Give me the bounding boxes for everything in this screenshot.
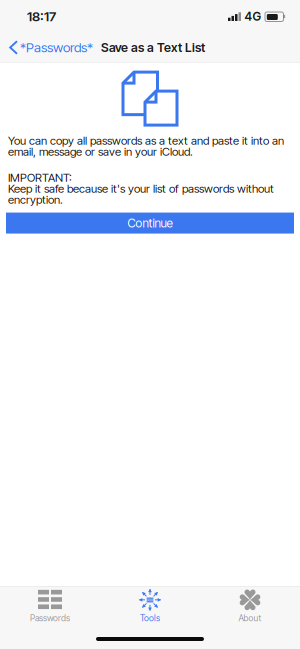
staticText: *Passwords* <box>20 39 93 55</box>
staticText: Save as a Text List <box>101 40 205 55</box>
staticText: You can copy all passwords as a text and… <box>8 134 284 158</box>
button[interactable]: *Passwords* <box>0 33 97 61</box>
staticText: Passwords <box>30 613 70 623</box>
staticText: About <box>238 613 261 623</box>
staticText: Continue <box>127 216 172 230</box>
button[interactable]: Passwords <box>0 587 100 626</box>
button[interactable]: Tools <box>100 587 200 626</box>
staticText: Tools <box>140 613 160 623</box>
button[interactable]: Continue <box>6 213 294 234</box>
staticText: 4G <box>244 9 261 24</box>
staticText: 18:17 <box>27 8 56 24</box>
button[interactable]: About <box>200 587 300 626</box>
staticText: IMPORTANT: Keep it safe because it's you… <box>8 170 274 206</box>
